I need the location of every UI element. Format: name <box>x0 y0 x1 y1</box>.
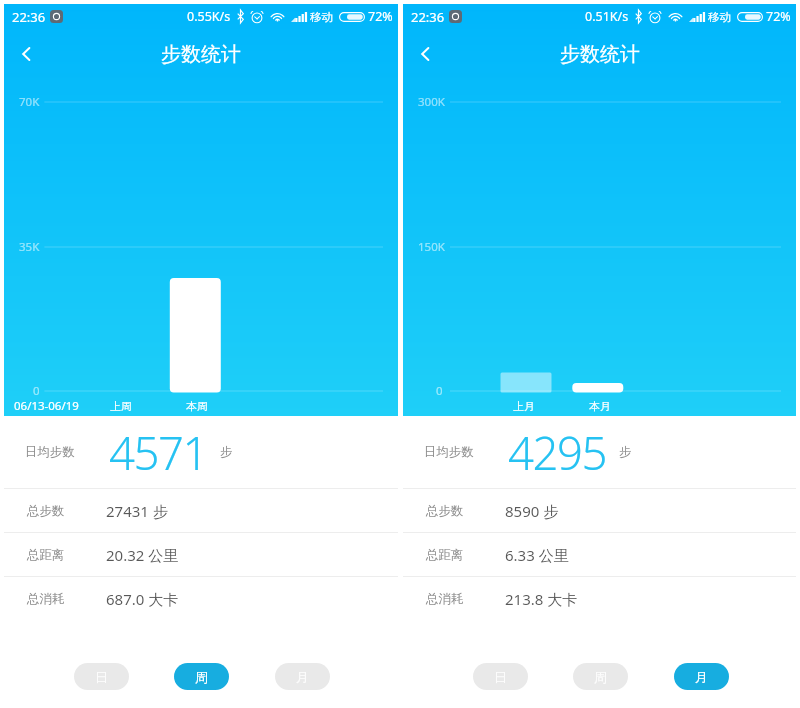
staticText: 本周 <box>186 400 208 414</box>
button[interactable]: 总步数 <box>4 489 398 532</box>
staticText: 150K <box>418 239 445 255</box>
staticText: 日均步数 <box>424 444 474 460</box>
staticText: 周 <box>195 669 208 685</box>
staticText: 移动 <box>708 10 731 24</box>
staticText: 总消耗 <box>27 591 65 607</box>
button[interactable]: 总步数 <box>403 489 796 532</box>
staticText: 总距离 <box>27 547 65 563</box>
staticText: 步数统计 <box>560 42 640 67</box>
staticText: 步 <box>619 444 632 460</box>
button[interactable]: Back <box>2 30 50 78</box>
button[interactable]: 月 <box>275 663 330 690</box>
staticText: 0.55K/s <box>187 8 231 25</box>
button[interactable]: 日 <box>74 663 129 690</box>
staticText: 日均步数 <box>25 444 75 460</box>
button[interactable]: 周 <box>573 663 628 690</box>
staticText: 70K <box>19 94 40 110</box>
button[interactable]: 周 <box>174 663 229 690</box>
staticText: 上周 <box>110 400 132 414</box>
staticText: 总步数 <box>426 503 464 519</box>
button[interactable]: 总距离 <box>403 533 796 576</box>
staticText: 总步数 <box>27 503 65 519</box>
staticText: 27431 步 <box>106 501 168 521</box>
staticText: 上月 <box>513 400 535 414</box>
button[interactable]: 月 <box>674 663 729 690</box>
staticText: 步 <box>220 444 233 460</box>
staticText: 35K <box>19 239 40 255</box>
button[interactable]: Back <box>401 30 449 78</box>
staticText: 周 <box>594 669 607 685</box>
staticText: 0 <box>33 383 40 399</box>
button[interactable]: 日均步数 <box>4 416 398 488</box>
staticText: 4571 <box>109 421 207 483</box>
staticText: 0.51K/s <box>585 8 629 25</box>
staticText: 总消耗 <box>426 591 464 607</box>
staticText: 步数统计 <box>161 42 241 67</box>
staticText: 72% <box>766 8 791 25</box>
staticText: 06/13-06/19 <box>14 398 79 414</box>
staticText: 月 <box>296 669 309 685</box>
staticText: 4295 <box>508 421 606 483</box>
staticText: 20.32 公里 <box>106 545 179 565</box>
staticText: 22:36 <box>411 8 445 26</box>
staticText: 本月 <box>589 400 611 414</box>
staticText: 6.33 公里 <box>505 545 569 565</box>
staticText: 总距离 <box>426 547 464 563</box>
staticText: 300K <box>418 94 445 110</box>
staticText: 日 <box>95 669 108 685</box>
button[interactable]: 总距离 <box>4 533 398 576</box>
staticText: 日 <box>494 669 507 685</box>
staticText: 213.8 大卡 <box>505 589 578 609</box>
staticText: 移动 <box>310 10 333 24</box>
button[interactable]: 总消耗 <box>4 577 398 620</box>
staticText: 22:36 <box>12 8 46 26</box>
staticText: 687.0 大卡 <box>106 589 179 609</box>
button[interactable]: 日 <box>473 663 528 690</box>
staticText: 0 <box>436 383 443 399</box>
button[interactable]: 总消耗 <box>403 577 796 620</box>
staticText: 8590 步 <box>505 501 559 521</box>
button[interactable]: 日均步数 <box>403 416 796 488</box>
staticText: 月 <box>695 669 708 685</box>
staticText: 72% <box>368 8 393 25</box>
